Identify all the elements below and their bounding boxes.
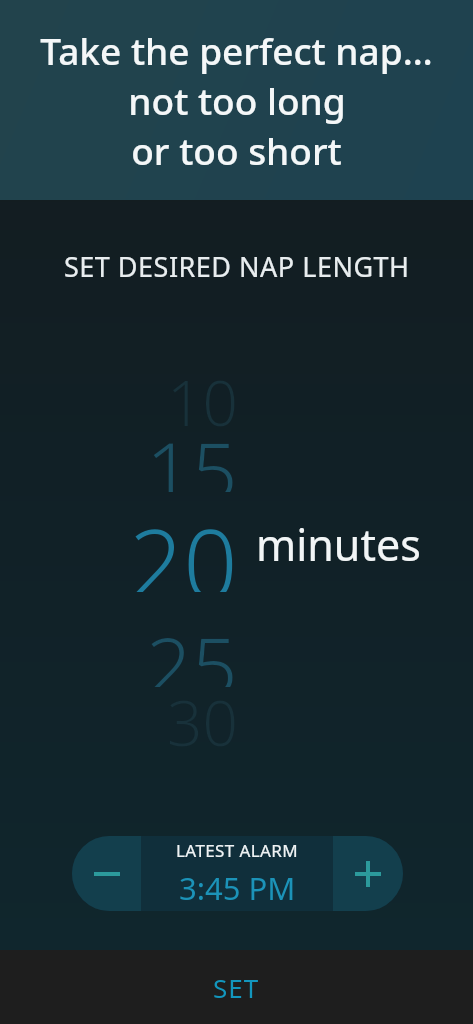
staticText: LATEST ALARM	[176, 839, 299, 862]
staticText: or too short	[131, 125, 342, 175]
button[interactable]: SET	[0, 950, 473, 1024]
staticText: SET	[213, 970, 260, 1005]
staticText: 10	[167, 360, 238, 438]
button[interactable]: 20	[0, 497, 238, 592]
staticText: 3:45 PM	[179, 867, 296, 909]
button[interactable]: Decrease alarm time	[72, 836, 141, 911]
button[interactable]: 30	[0, 680, 238, 758]
button[interactable]: LATEST ALARM	[141, 836, 333, 911]
staticText: 20	[129, 497, 238, 592]
button[interactable]: 25	[0, 609, 238, 687]
button[interactable]: Increase alarm time	[333, 836, 403, 911]
staticText: minutes	[256, 515, 421, 574]
staticText: 30	[167, 680, 238, 758]
staticText: SET DESIRED NAP LENGTH	[64, 248, 410, 285]
staticText: 25	[146, 609, 238, 687]
button[interactable]: 10	[0, 360, 238, 438]
button[interactable]: 15	[0, 414, 238, 492]
staticText: not too long	[128, 75, 346, 125]
staticText: Take the perfect nap…	[40, 25, 433, 75]
staticText: 15	[146, 414, 238, 492]
